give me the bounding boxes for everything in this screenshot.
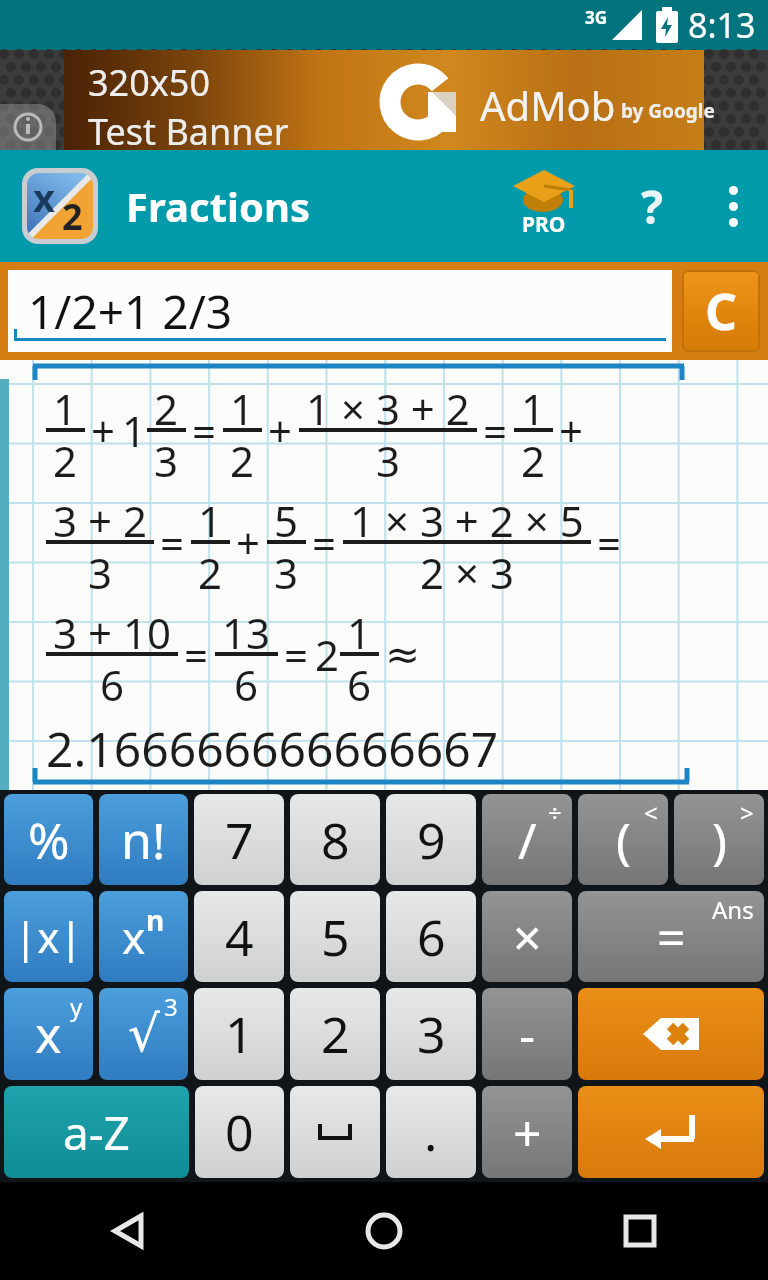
staticText: 2 [521, 432, 546, 480]
staticText: + [268, 402, 293, 459]
staticText: 3G [585, 6, 608, 29]
staticText: 3 + 10 [53, 604, 171, 652]
button[interactable]: y [4, 988, 93, 1080]
staticText: ÷ [548, 796, 562, 829]
staticText: x [122, 907, 146, 967]
staticText: ? [641, 175, 663, 238]
staticText: √ [128, 1005, 160, 1063]
button[interactable]: n! [99, 794, 188, 885]
staticText: ≈ [385, 630, 421, 679]
button[interactable]: C [682, 270, 760, 352]
button[interactable]: 3 [99, 988, 188, 1080]
button[interactable]: 0 [195, 1086, 284, 1178]
staticText: 2 [198, 544, 223, 592]
staticText: 2 [154, 380, 179, 428]
button[interactable]: ÷ [482, 794, 572, 885]
staticText: = [597, 514, 622, 571]
button[interactable]: 8 [290, 794, 380, 885]
button[interactable] [0, 1182, 256, 1280]
staticText: 3 [88, 544, 113, 592]
staticText: / [518, 806, 537, 874]
staticText: 5 [274, 492, 299, 540]
button[interactable]: × [482, 891, 572, 982]
button[interactable]: Ans [578, 891, 764, 982]
button[interactable]: ? [641, 175, 663, 238]
staticText: ( [616, 806, 631, 874]
button[interactable]: 6 [386, 891, 476, 982]
button[interactable] [290, 1086, 380, 1178]
button[interactable] [578, 1086, 764, 1178]
staticText: 1 × 3 + 2 [306, 380, 470, 428]
staticText: = [184, 626, 209, 683]
staticText: 7 [225, 806, 254, 874]
button[interactable]: 4 [194, 891, 284, 982]
staticText: 3 [154, 432, 179, 480]
staticText: y [70, 990, 83, 1023]
staticText: by Google [616, 98, 715, 124]
staticText: 320x50 [88, 58, 211, 107]
button[interactable]: |x| [4, 891, 93, 982]
staticText: 0 [225, 1098, 254, 1166]
staticText: 4 [225, 903, 254, 971]
button[interactable]: 7 [194, 794, 284, 885]
staticText: + [559, 402, 584, 459]
staticText: 6 [234, 656, 259, 704]
staticText: > [740, 796, 754, 829]
staticText: 8:13 [688, 2, 756, 48]
button[interactable]: - [482, 988, 572, 1080]
button[interactable]: . [386, 1086, 476, 1178]
staticText: = [284, 626, 309, 683]
button[interactable]: + [482, 1086, 572, 1178]
button[interactable]: 1/2+1 2/3 [8, 270, 672, 352]
staticText: C [705, 277, 738, 345]
staticText: 2 [62, 192, 83, 239]
staticText: 9 [417, 806, 446, 874]
staticText: × [513, 903, 542, 971]
button[interactable] [256, 1182, 512, 1280]
staticText: 3 [376, 432, 401, 480]
button[interactable] [512, 1182, 768, 1280]
staticText: 2 [230, 432, 255, 480]
button[interactable]: 9 [386, 794, 476, 885]
staticText: x [35, 1000, 62, 1068]
button[interactable]: > [674, 794, 764, 885]
button[interactable]: % [4, 794, 93, 885]
staticText: = [160, 514, 185, 571]
staticText: 2 [321, 1000, 350, 1068]
staticText: 1/2+1 2/3 [28, 280, 233, 343]
staticText: 1 [225, 1000, 254, 1068]
staticText: 13 [222, 604, 271, 652]
staticText: = [312, 514, 337, 571]
staticText: n! [121, 806, 166, 874]
staticText: 6 [347, 656, 372, 704]
staticText: 3 + 2 [53, 492, 147, 540]
button[interactable]: 2 [290, 988, 380, 1080]
staticText: 5 [321, 903, 350, 971]
button[interactable] [578, 988, 764, 1080]
staticText: 1 [198, 492, 223, 540]
staticText: - [519, 1000, 536, 1068]
button[interactable]: a-Z [4, 1086, 189, 1178]
staticText: 2 [315, 626, 340, 683]
staticText: 1 [230, 380, 255, 428]
button[interactable]: < [578, 794, 668, 885]
staticText: PRO [522, 210, 566, 239]
staticText: Ans [712, 893, 754, 926]
staticText: Test Banner [88, 107, 289, 156]
staticText: 1 [521, 380, 546, 428]
button[interactable]: 1 [194, 988, 284, 1080]
staticText: Fractions [126, 179, 311, 233]
button[interactable]: 5 [290, 891, 380, 982]
button[interactable]: PRO [511, 170, 577, 243]
button[interactable]: 3 [386, 988, 476, 1080]
staticText: 1 [53, 380, 78, 428]
staticText: 6 [100, 656, 125, 704]
staticText: + [236, 514, 261, 571]
staticText: + [513, 1098, 542, 1166]
button[interactable] [721, 186, 746, 227]
staticText: 1 [122, 402, 147, 459]
button[interactable]: x [99, 891, 188, 982]
staticText: x [33, 173, 55, 223]
button[interactable]: 320x50 [64, 50, 704, 150]
staticText: 1 [347, 604, 372, 652]
